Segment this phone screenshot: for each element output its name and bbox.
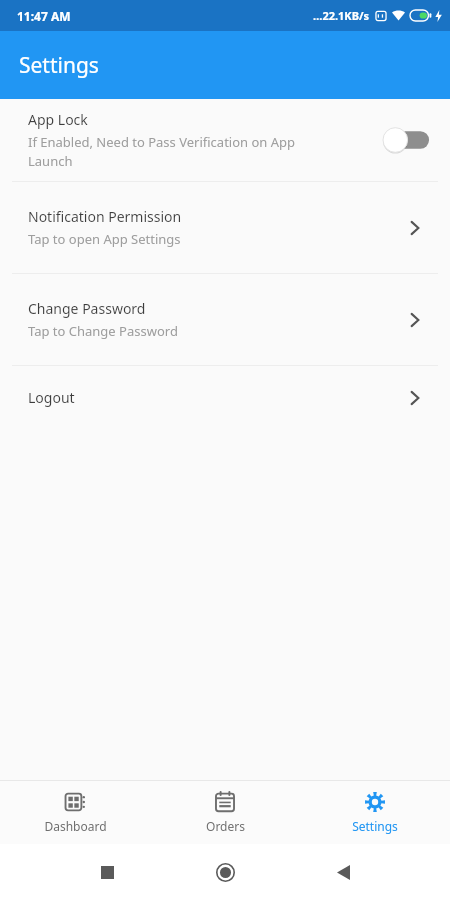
staticText: Tap to open App Settings <box>28 230 181 248</box>
button[interactable]: Dashboard <box>0 785 150 840</box>
button[interactable]: Logout <box>0 366 450 429</box>
button[interactable]: Change Password <box>0 274 450 365</box>
button[interactable]: Settings <box>300 785 450 840</box>
button[interactable]: App Lock toggle, off <box>382 126 430 154</box>
staticText: Logout <box>28 388 75 407</box>
button[interactable]: Notification Permission <box>0 182 450 273</box>
staticText: Settings <box>352 818 398 834</box>
staticText: If Enabled, Need to Pass Verification on… <box>28 133 296 170</box>
staticText: Tap to Change Password <box>28 322 178 340</box>
staticText: Change Password <box>28 299 146 318</box>
staticText: Orders <box>206 818 245 834</box>
staticText: …22.1KB/s <box>313 8 370 23</box>
button[interactable]: Back <box>326 855 360 889</box>
button[interactable]: App Lock <box>0 99 450 181</box>
button[interactable]: Recent apps <box>90 855 124 889</box>
staticText: Notification Permission <box>28 207 182 226</box>
button[interactable]: Open <box>400 213 430 243</box>
button[interactable]: Open <box>400 383 430 413</box>
staticText: App Lock <box>28 110 88 129</box>
button[interactable]: Home <box>208 855 242 889</box>
button[interactable]: Orders <box>150 785 300 840</box>
button[interactable]: Open <box>400 305 430 335</box>
staticText: Dashboard <box>44 818 107 834</box>
staticText: 11:47 AM <box>17 8 71 24</box>
staticText: Settings <box>19 51 99 80</box>
